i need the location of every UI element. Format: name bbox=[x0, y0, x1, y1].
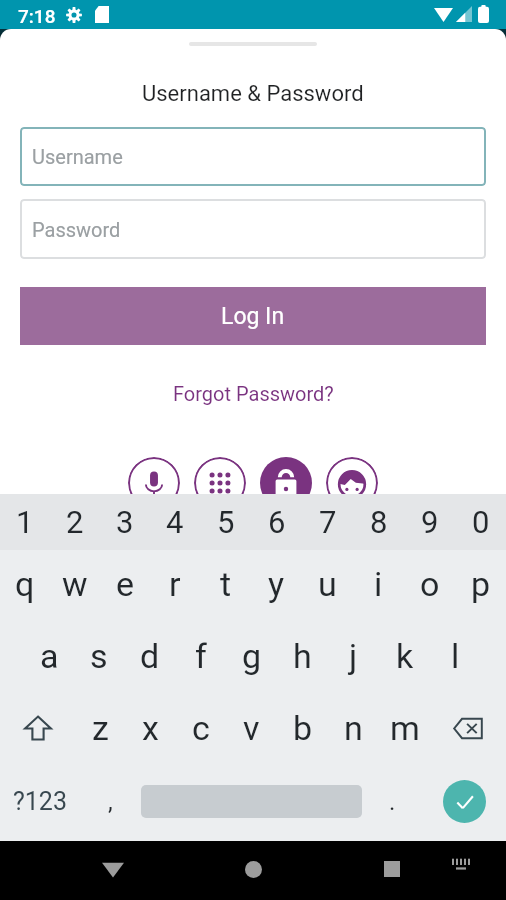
staticText: o bbox=[420, 564, 440, 604]
staticText: Log In bbox=[221, 303, 285, 330]
button[interactable]: v bbox=[226, 694, 277, 762]
button[interactable]: d bbox=[124, 617, 175, 694]
staticText: 1 bbox=[16, 504, 34, 540]
button[interactable]: Forgot Password? bbox=[173, 382, 334, 405]
button[interactable]: Log In bbox=[20, 287, 486, 345]
button[interactable]: Home bbox=[225, 841, 281, 897]
staticText: 6 bbox=[268, 504, 286, 540]
staticText: d bbox=[140, 636, 160, 676]
button[interactable]: , bbox=[80, 762, 141, 841]
staticText: h bbox=[293, 636, 312, 676]
button[interactable]: Account bbox=[326, 457, 378, 494]
button[interactable]: 2 bbox=[50, 494, 100, 550]
button[interactable]: Username bbox=[20, 127, 486, 186]
button[interactable]: Shift bbox=[0, 694, 75, 762]
staticText: g bbox=[242, 636, 262, 676]
staticText: 4 bbox=[166, 504, 184, 540]
button[interactable]: s bbox=[74, 617, 124, 694]
staticText: b bbox=[293, 708, 313, 748]
button[interactable]: j bbox=[328, 617, 379, 694]
staticText: 7 bbox=[319, 504, 337, 540]
button[interactable]: o bbox=[404, 550, 455, 617]
button[interactable]: 8 bbox=[353, 494, 404, 550]
button[interactable]: 3 bbox=[100, 494, 150, 550]
staticText: q bbox=[15, 564, 35, 604]
button[interactable]: b bbox=[277, 694, 328, 762]
staticText: c bbox=[192, 708, 210, 748]
staticText: k bbox=[396, 636, 414, 676]
button[interactable]: r bbox=[150, 550, 200, 617]
staticText: Username & Password bbox=[142, 81, 364, 107]
button[interactable]: Back bbox=[85, 841, 141, 897]
button[interactable]: 1 bbox=[0, 494, 50, 550]
button[interactable]: h bbox=[277, 617, 328, 694]
staticText: s bbox=[90, 636, 108, 676]
button[interactable]: x bbox=[125, 694, 175, 762]
button[interactable]: Voice search bbox=[128, 457, 180, 494]
button[interactable]: w bbox=[50, 550, 100, 617]
staticText: x bbox=[142, 708, 159, 748]
button[interactable]: Enter bbox=[443, 780, 486, 823]
button[interactable]: ?123 bbox=[0, 762, 80, 841]
button[interactable]: q bbox=[0, 550, 50, 617]
staticText: 7:18 bbox=[18, 5, 56, 27]
button[interactable]: Backspace bbox=[430, 694, 506, 762]
button[interactable]: n bbox=[328, 694, 379, 762]
button[interactable]: m bbox=[379, 694, 430, 762]
staticText: v bbox=[243, 708, 260, 748]
staticText: , bbox=[108, 788, 113, 816]
button[interactable]: . bbox=[362, 762, 423, 841]
staticText: i bbox=[374, 564, 383, 604]
staticText: y bbox=[268, 564, 285, 604]
button[interactable]: Switch keyboard bbox=[438, 841, 484, 887]
staticText: 0 bbox=[472, 504, 490, 540]
button[interactable]: Recent apps bbox=[364, 841, 420, 897]
staticText: 8 bbox=[370, 504, 388, 540]
button[interactable]: 4 bbox=[150, 494, 200, 550]
staticText: n bbox=[344, 708, 363, 748]
button[interactable]: u bbox=[302, 550, 353, 617]
staticText: a bbox=[40, 636, 59, 676]
staticText: . bbox=[389, 788, 396, 816]
button[interactable]: z bbox=[75, 694, 125, 762]
staticText: f bbox=[195, 636, 207, 676]
staticText: 3 bbox=[116, 504, 134, 540]
staticText: Username bbox=[32, 145, 123, 168]
button[interactable]: 9 bbox=[404, 494, 455, 550]
staticText: Password bbox=[32, 218, 121, 241]
button[interactable]: 6 bbox=[251, 494, 302, 550]
button[interactable]: Password bbox=[20, 199, 486, 259]
staticText: w bbox=[62, 564, 88, 604]
staticText: u bbox=[318, 564, 337, 604]
staticText: m bbox=[390, 708, 420, 748]
staticText: 2 bbox=[66, 504, 84, 540]
button[interactable]: k bbox=[379, 617, 430, 694]
staticText: l bbox=[451, 636, 460, 676]
button[interactable]: 7 bbox=[302, 494, 353, 550]
button[interactable]: p bbox=[455, 550, 506, 617]
button[interactable]: i bbox=[353, 550, 404, 617]
staticText: z bbox=[92, 708, 109, 748]
button[interactable]: g bbox=[226, 617, 277, 694]
staticText: r bbox=[169, 564, 181, 604]
staticText: e bbox=[116, 564, 135, 604]
staticText: j bbox=[349, 636, 358, 676]
staticText: 5 bbox=[217, 504, 235, 540]
button[interactable]: f bbox=[175, 617, 226, 694]
button[interactable]: a bbox=[24, 617, 74, 694]
button[interactable]: l bbox=[430, 617, 481, 694]
staticText: 9 bbox=[421, 504, 439, 540]
button[interactable] bbox=[141, 762, 362, 841]
staticText: p bbox=[471, 564, 491, 604]
staticText: ?123 bbox=[13, 787, 67, 816]
button[interactable]: 5 bbox=[200, 494, 251, 550]
button[interactable]: Password bbox=[260, 457, 312, 494]
button[interactable]: t bbox=[200, 550, 251, 617]
button[interactable]: c bbox=[175, 694, 226, 762]
button[interactable]: Keypad bbox=[194, 457, 246, 494]
button[interactable]: e bbox=[100, 550, 150, 617]
staticText: t bbox=[220, 564, 232, 604]
button[interactable]: 0 bbox=[455, 494, 506, 550]
button[interactable]: y bbox=[251, 550, 302, 617]
